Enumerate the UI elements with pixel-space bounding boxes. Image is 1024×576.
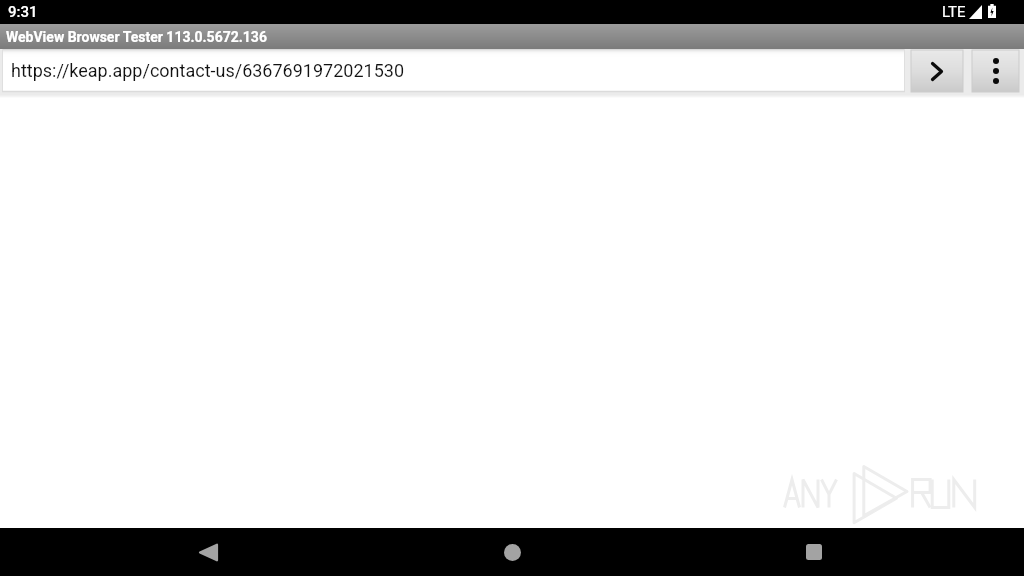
staticText: https://keap.app/contact-us/636769197202…: [11, 60, 404, 81]
staticText: WebView Browser Tester 113.0.5672.136: [6, 29, 267, 45]
staticText: 9:31: [8, 3, 38, 21]
staticText: LTE: [942, 3, 966, 21]
button[interactable]: More options: [972, 50, 1019, 92]
button[interactable]: https://keap.app/contact-us/636769197202…: [2, 49, 905, 92]
button[interactable]: Home: [464, 528, 560, 576]
button[interactable]: Go: [911, 50, 963, 92]
button[interactable]: Recent apps: [766, 528, 862, 576]
button[interactable]: Back: [160, 528, 256, 576]
